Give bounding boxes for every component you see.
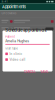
staticText: In clinic — [9, 52, 22, 56]
staticText: Amelia Hughes — [5, 39, 29, 43]
button[interactable]: SAVE — [39, 69, 50, 74]
staticText: Visit type — [5, 47, 18, 50]
button[interactable]: In clinic — [5, 52, 50, 56]
staticText: Video call — [9, 58, 25, 61]
staticText: UPCOMING — [2, 12, 17, 15]
button[interactable]: Video call — [5, 58, 50, 61]
button[interactable]: CANCEL — [23, 69, 37, 74]
staticText: SAVE — [40, 70, 48, 74]
staticText: Appointments — [2, 4, 26, 9]
staticText: Patient — [5, 35, 15, 38]
staticText: Schedule appointment — [5, 28, 46, 33]
staticText: 9:41 — [1, 0, 7, 3]
staticText: CANCEL — [24, 70, 36, 74]
